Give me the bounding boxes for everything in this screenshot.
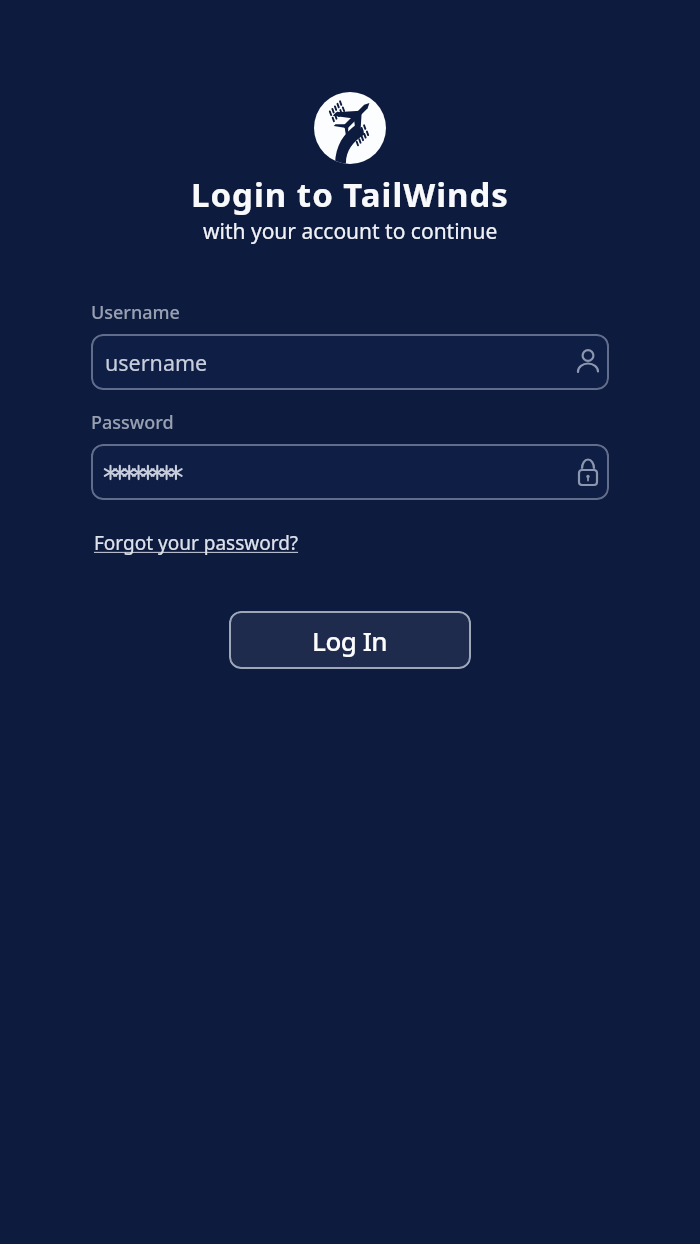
button[interactable]: username <box>91 334 609 390</box>
staticText: Password <box>91 410 174 435</box>
button[interactable]: Forgot your password? <box>94 530 299 556</box>
button[interactable] <box>91 444 609 500</box>
staticText: with your account to continue <box>203 217 498 246</box>
staticText: Username <box>91 300 180 325</box>
staticText: username <box>105 348 208 377</box>
staticText: Log In <box>312 623 388 658</box>
button[interactable]: Log In <box>229 611 471 669</box>
staticText: Login to TailWinds <box>191 172 509 217</box>
